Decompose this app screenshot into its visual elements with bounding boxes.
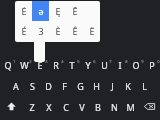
- button[interactable]: R: [48, 54, 64, 75]
- staticText: Ę: [55, 5, 61, 17]
- button[interactable]: Z: [23, 96, 40, 117]
- button[interactable]: L: [136, 75, 152, 96]
- staticText: X: [46, 101, 52, 113]
- staticText: N: [111, 101, 118, 113]
- staticText: B: [95, 101, 101, 113]
- staticText: O: [132, 59, 140, 71]
- button[interactable]: Ē: [66, 1, 83, 21]
- staticText: É: [21, 25, 27, 37]
- button[interactable]: Q: [0, 54, 16, 75]
- button[interactable]: Ê: [66, 21, 83, 41]
- button[interactable]: Y: [80, 54, 96, 75]
- staticText: C: [63, 101, 69, 113]
- staticText: Y: [85, 59, 91, 71]
- staticText: 0: [157, 59, 160, 64]
- button[interactable]: B: [90, 96, 106, 117]
- staticText: 4: [61, 59, 64, 64]
- button[interactable]: Shift: [0, 96, 23, 117]
- button[interactable]: E: [32, 54, 48, 75]
- button[interactable]: É: [15, 21, 32, 41]
- button[interactable]: P: [144, 54, 160, 75]
- button[interactable]: S: [24, 75, 40, 96]
- staticText: 3: [45, 59, 48, 64]
- staticText: V: [79, 101, 85, 113]
- button[interactable]: O: [128, 54, 144, 75]
- button[interactable]: Backspace: [138, 96, 160, 117]
- button[interactable]: A: [8, 75, 24, 96]
- staticText: È: [55, 25, 61, 37]
- button[interactable]: X: [40, 96, 57, 117]
- staticText: 6: [93, 59, 96, 64]
- staticText: Q: [4, 59, 12, 71]
- staticText: R: [53, 59, 59, 71]
- staticText: I: [118, 59, 122, 71]
- staticText: G: [77, 80, 84, 92]
- staticText: F: [62, 80, 67, 92]
- staticText: J: [111, 80, 114, 92]
- button[interactable]: Ę: [49, 1, 66, 21]
- button[interactable]: F: [56, 75, 72, 96]
- button[interactable]: D: [40, 75, 56, 96]
- button[interactable]: G: [72, 75, 88, 96]
- staticText: M: [126, 101, 135, 113]
- staticText: 5: [77, 59, 80, 64]
- staticText: 1: [13, 59, 16, 64]
- button[interactable]: J: [104, 75, 120, 96]
- staticText: K: [125, 80, 131, 92]
- staticText: Ė: [21, 5, 27, 17]
- button[interactable]: 3: [32, 21, 49, 41]
- staticText: 2: [29, 59, 32, 64]
- staticText: ə: [38, 5, 44, 17]
- staticText: Ē: [72, 5, 78, 17]
- staticText: 8: [125, 59, 128, 64]
- button[interactable]: K: [120, 75, 136, 96]
- button[interactable]: T: [64, 54, 80, 75]
- staticText: E: [37, 59, 43, 71]
- staticText: T: [69, 59, 75, 71]
- staticText: U: [101, 59, 108, 71]
- staticText: A: [13, 80, 19, 92]
- button[interactable]: Ė: [15, 1, 32, 21]
- staticText: Ê: [72, 25, 78, 37]
- button[interactable]: U: [96, 54, 112, 75]
- staticText: 3: [38, 25, 44, 37]
- staticText: L: [142, 80, 147, 92]
- button[interactable]: H: [88, 75, 104, 96]
- button[interactable]: V: [74, 96, 90, 117]
- button[interactable]: N: [106, 96, 122, 117]
- staticText: D: [45, 80, 52, 92]
- button[interactable]: Ë: [83, 21, 100, 41]
- button[interactable]: M: [122, 96, 138, 117]
- staticText: S: [30, 80, 35, 92]
- staticText: 9: [141, 59, 144, 64]
- staticText: H: [93, 80, 100, 92]
- button[interactable]: W: [16, 54, 32, 75]
- button[interactable]: I: [112, 54, 128, 75]
- staticText: Z: [29, 101, 35, 113]
- staticText: P: [149, 59, 155, 71]
- staticText: 7: [109, 59, 112, 64]
- staticText: W: [20, 59, 29, 71]
- button[interactable]: ə: [32, 1, 49, 21]
- button[interactable]: C: [57, 96, 74, 117]
- button[interactable]: È: [49, 21, 66, 41]
- staticText: Ë: [89, 25, 95, 37]
